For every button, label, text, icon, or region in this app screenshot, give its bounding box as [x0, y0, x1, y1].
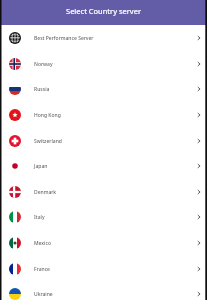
other: Open Switzerland	[196, 138, 202, 144]
staticText: Mexico	[34, 240, 51, 247]
button[interactable]: Best Performance Server	[0, 25, 207, 51]
staticText: Japan	[34, 163, 48, 170]
button[interactable]: Japan	[0, 153, 207, 179]
button[interactable]: Denmark	[0, 179, 207, 205]
other: Open Russia	[196, 86, 202, 92]
other: Open Italy	[196, 214, 202, 220]
other: Open Mexico	[196, 240, 202, 246]
other: Open Denmark	[196, 189, 202, 195]
staticText: Ukraine	[34, 291, 53, 298]
staticText: Norway	[34, 61, 53, 68]
button[interactable]: Hong Kong	[0, 102, 207, 128]
other: Open Ukraine	[196, 291, 202, 297]
staticText: Denmark	[34, 189, 57, 196]
button[interactable]: Russia	[0, 76, 207, 102]
button[interactable]: Norway	[0, 51, 207, 77]
other: Open Japan	[196, 163, 202, 169]
button[interactable]: Italy	[0, 204, 207, 230]
other: Open France	[196, 266, 202, 272]
staticText: Hong Kong	[34, 112, 61, 119]
staticText: Switzerland	[34, 138, 62, 145]
other: Open Hong Kong	[196, 112, 202, 118]
other: Open Best Performance Server	[196, 35, 202, 41]
button[interactable]: France	[0, 256, 207, 282]
button[interactable]: Ukraine	[0, 281, 207, 300]
staticText: France	[34, 266, 50, 273]
staticText: Select Country server	[66, 6, 141, 16]
staticText: Best Performance Server	[34, 35, 94, 42]
button[interactable]: Mexico	[0, 230, 207, 256]
staticText: Italy	[34, 214, 45, 221]
button[interactable]: Switzerland	[0, 128, 207, 154]
other: Open Norway	[196, 61, 202, 67]
staticText: Russia	[34, 86, 50, 93]
